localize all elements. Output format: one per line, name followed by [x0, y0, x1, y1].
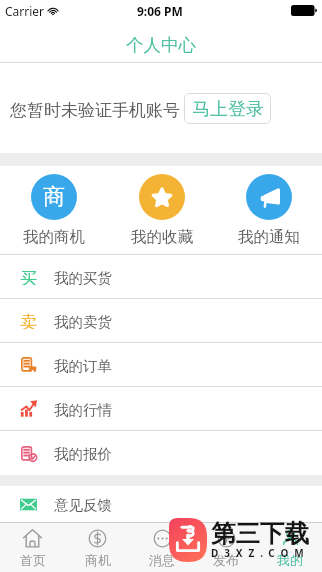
staticText: 商 [43, 183, 65, 211]
staticText: D3XZ.COM [211, 546, 310, 560]
button[interactable]: 消息 [130, 523, 194, 572]
staticText: 卖 [20, 312, 37, 329]
button[interactable]: 商 [0, 166, 108, 254]
staticText: 意见反馈 [54, 496, 112, 514]
staticText: 我的收藏 [131, 227, 193, 247]
staticText: 发布 [213, 552, 239, 568]
staticText: 我的订单 [54, 357, 112, 375]
button[interactable]: 我的行情 [0, 387, 322, 430]
button[interactable]: 我的报价 [0, 431, 322, 475]
button[interactable]: 卖 [0, 299, 322, 342]
button[interactable]: 意见反馈 [0, 486, 322, 522]
button[interactable]: 我的 [258, 523, 322, 572]
staticText: 我的买货 [54, 269, 112, 287]
button[interactable]: 发布 [194, 523, 258, 572]
staticText: 商机 [85, 552, 111, 568]
staticText: 我的行情 [54, 401, 112, 419]
button[interactable]: 我的订单 [0, 343, 322, 386]
button[interactable]: 我的收藏 [108, 166, 215, 254]
button[interactable]: 我的通知 [215, 166, 322, 254]
button[interactable]: 首页 [0, 523, 65, 572]
staticText: 第三下载 [211, 518, 309, 549]
staticText: 个人中心 [126, 34, 196, 56]
staticText: 首页 [20, 552, 46, 568]
staticText: 我的报价 [54, 445, 112, 463]
staticText: 我的卖货 [54, 313, 112, 331]
staticText: 我的通知 [238, 227, 300, 247]
button[interactable]: 马上登录 [184, 93, 271, 124]
staticText: 9:06 PM [137, 3, 183, 19]
staticText: 买 [20, 268, 37, 285]
staticText: 消息 [149, 552, 175, 568]
button[interactable]: 商机 [65, 523, 130, 572]
staticText: Carrier [5, 3, 45, 19]
staticText: 我的商机 [23, 227, 85, 247]
staticText: 我的 [277, 552, 303, 568]
staticText: 马上登录 [192, 98, 264, 121]
staticText: 您暂时未验证手机账号 [10, 100, 180, 121]
button[interactable]: 买 [0, 255, 322, 298]
